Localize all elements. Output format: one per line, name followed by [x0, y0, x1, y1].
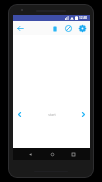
staticText: start: [48, 112, 56, 117]
button[interactable]: Back: [25, 149, 35, 159]
button[interactable]: Previous: [14, 109, 25, 120]
button[interactable]: Back: [15, 23, 26, 34]
staticText: 12:30: [79, 16, 88, 20]
button[interactable]: Recents: [68, 149, 78, 159]
button[interactable]: Block: [63, 23, 74, 34]
button[interactable]: Home: [47, 149, 57, 159]
button[interactable]: Document: [49, 23, 60, 34]
button[interactable]: Settings: [77, 23, 88, 34]
button[interactable]: Next: [78, 109, 89, 120]
